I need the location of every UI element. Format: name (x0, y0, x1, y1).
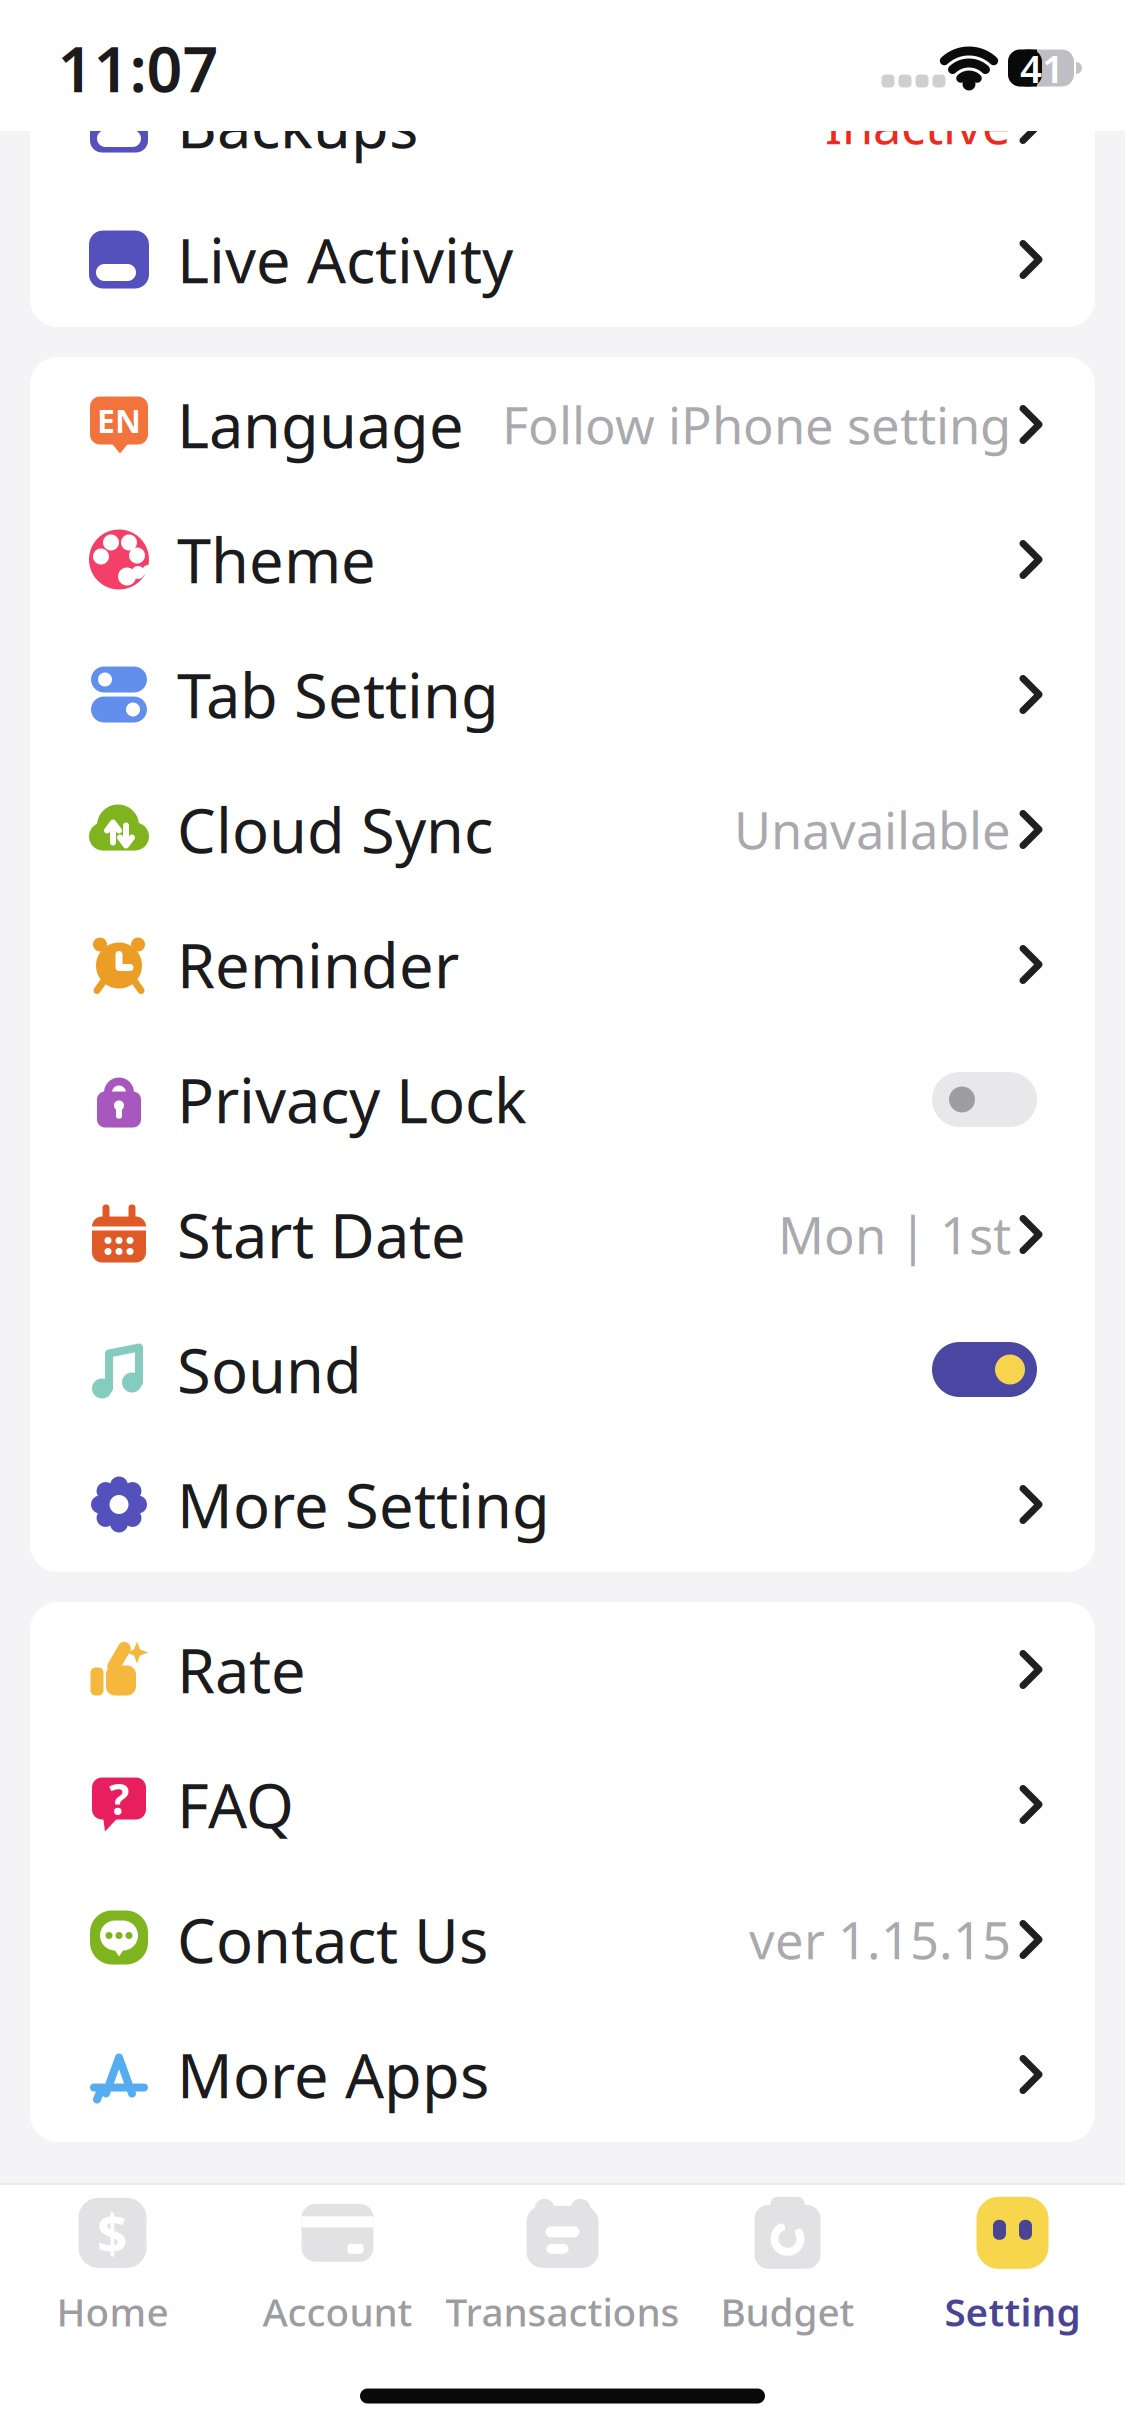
staticText: Privacy Lock (177, 1059, 527, 1140)
button[interactable]: Start Date (30, 1167, 1095, 1302)
button[interactable]: Account (225, 2192, 450, 2342)
button[interactable]: ? (30, 1737, 1095, 1872)
staticText: $ (97, 2197, 128, 2268)
staticText: ? (109, 1770, 129, 1827)
staticText: Inactive (825, 91, 1011, 158)
staticText: Home (56, 2286, 168, 2337)
button[interactable]: Budget (675, 2192, 900, 2342)
button[interactable]: Cloud Sync (30, 762, 1095, 897)
button[interactable]: Theme (30, 492, 1095, 627)
staticText: Budget (720, 2286, 854, 2337)
button[interactable]: Reminder (30, 897, 1095, 1032)
button[interactable]: Sound (30, 1302, 1095, 1437)
staticText: More Setting (177, 1464, 550, 1545)
staticText: Backups (177, 84, 418, 165)
staticText: Mon | 1st (778, 1201, 1011, 1268)
staticText: Transactions (445, 2286, 679, 2337)
button[interactable]: More Apps (30, 2007, 1095, 2142)
button[interactable]: EN (30, 357, 1095, 492)
staticText: Contact Us (177, 1899, 488, 1980)
button[interactable]: More Setting (30, 1437, 1095, 1572)
staticText: Rate (177, 1629, 306, 1710)
button[interactable]: Live Activity (30, 192, 1095, 327)
staticText: More Apps (177, 2034, 489, 2115)
staticText: EN (97, 399, 141, 442)
staticText: Live Activity (177, 219, 513, 300)
button[interactable]: Setting (900, 2192, 1125, 2342)
staticText: Start Date (177, 1194, 466, 1275)
staticText: Unavailable (734, 796, 1011, 863)
staticText: Tab Setting (177, 654, 499, 735)
button[interactable]: Transactions (450, 2192, 675, 2342)
staticText: Account (262, 2286, 412, 2337)
staticText: 11:07 (57, 26, 218, 110)
staticText: Theme (177, 519, 376, 600)
button[interactable]: Tab Setting (30, 627, 1095, 762)
staticText: Follow iPhone setting (502, 391, 1011, 458)
staticText: 41 (1020, 42, 1064, 94)
button[interactable]: Contact Us (30, 1872, 1095, 2007)
button[interactable]: Rate (30, 1602, 1095, 1737)
button[interactable]: $ (0, 2192, 225, 2342)
staticText: Setting (944, 2286, 1080, 2337)
staticText: Cloud Sync (177, 789, 493, 870)
button[interactable]: Privacy Lock (30, 1032, 1095, 1167)
staticText: Sound (177, 1329, 362, 1410)
staticText: Language (177, 384, 464, 465)
staticText: ver 1.15.15 (749, 1906, 1011, 1973)
staticText: Reminder (177, 924, 459, 1005)
button[interactable]: Backups (30, 57, 1095, 192)
staticText: FAQ (177, 1764, 294, 1845)
